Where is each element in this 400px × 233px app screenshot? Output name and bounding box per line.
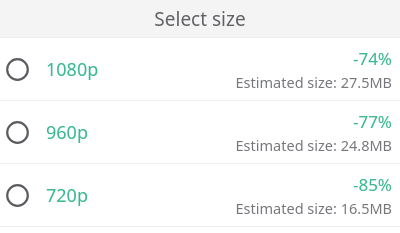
staticText: Estimated size: 24.8MB: [235, 135, 392, 155]
staticText: 720p: [46, 183, 88, 208]
button[interactable]: Select 1080p: [0, 38, 400, 100]
staticText: Estimated size: 27.5MB: [235, 72, 392, 92]
button[interactable]: Select 720p: [0, 164, 400, 226]
staticText: 1080p: [46, 57, 99, 82]
staticText: 960p: [46, 120, 88, 145]
button[interactable]: Select 960p: [0, 101, 400, 163]
staticText: -85%: [352, 173, 392, 196]
staticText: Estimated size: 16.5MB: [235, 198, 392, 218]
staticText: -74%: [352, 47, 392, 70]
other: Select 960p: [6, 121, 29, 144]
other: Select 720p: [6, 184, 29, 207]
staticText: Select size: [154, 6, 246, 32]
other: Select 1080p: [6, 58, 29, 81]
staticText: -77%: [352, 110, 392, 133]
